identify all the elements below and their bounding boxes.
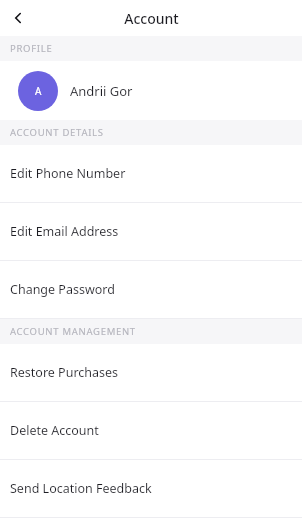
button[interactable]: Send Location Feedback	[0, 460, 302, 517]
staticText: Edit Phone Number	[10, 165, 126, 182]
staticText: ACCOUNT DETAILS	[10, 126, 104, 139]
staticText: Restore Purchases	[10, 364, 119, 381]
staticText: Send Location Feedback	[10, 480, 152, 497]
button[interactable]: Edit Email Address	[0, 203, 302, 260]
staticText: Account	[124, 9, 179, 28]
button[interactable]: Delete Account	[0, 402, 302, 459]
button[interactable]: Back	[0, 0, 36, 36]
button[interactable]: A	[0, 61, 302, 120]
staticText: A	[35, 84, 42, 98]
button[interactable]: Edit Phone Number	[0, 145, 302, 202]
staticText: PROFILE	[10, 42, 53, 55]
staticText: ACCOUNT MANAGEMENT	[10, 325, 136, 338]
staticText: Delete Account	[10, 422, 99, 439]
button[interactable]: Restore Purchases	[0, 344, 302, 401]
staticText: Change Password	[10, 281, 115, 298]
button[interactable]: Change Password	[0, 261, 302, 318]
staticText: Edit Email Address	[10, 223, 119, 240]
staticText: Andrii Gor	[70, 82, 133, 100]
